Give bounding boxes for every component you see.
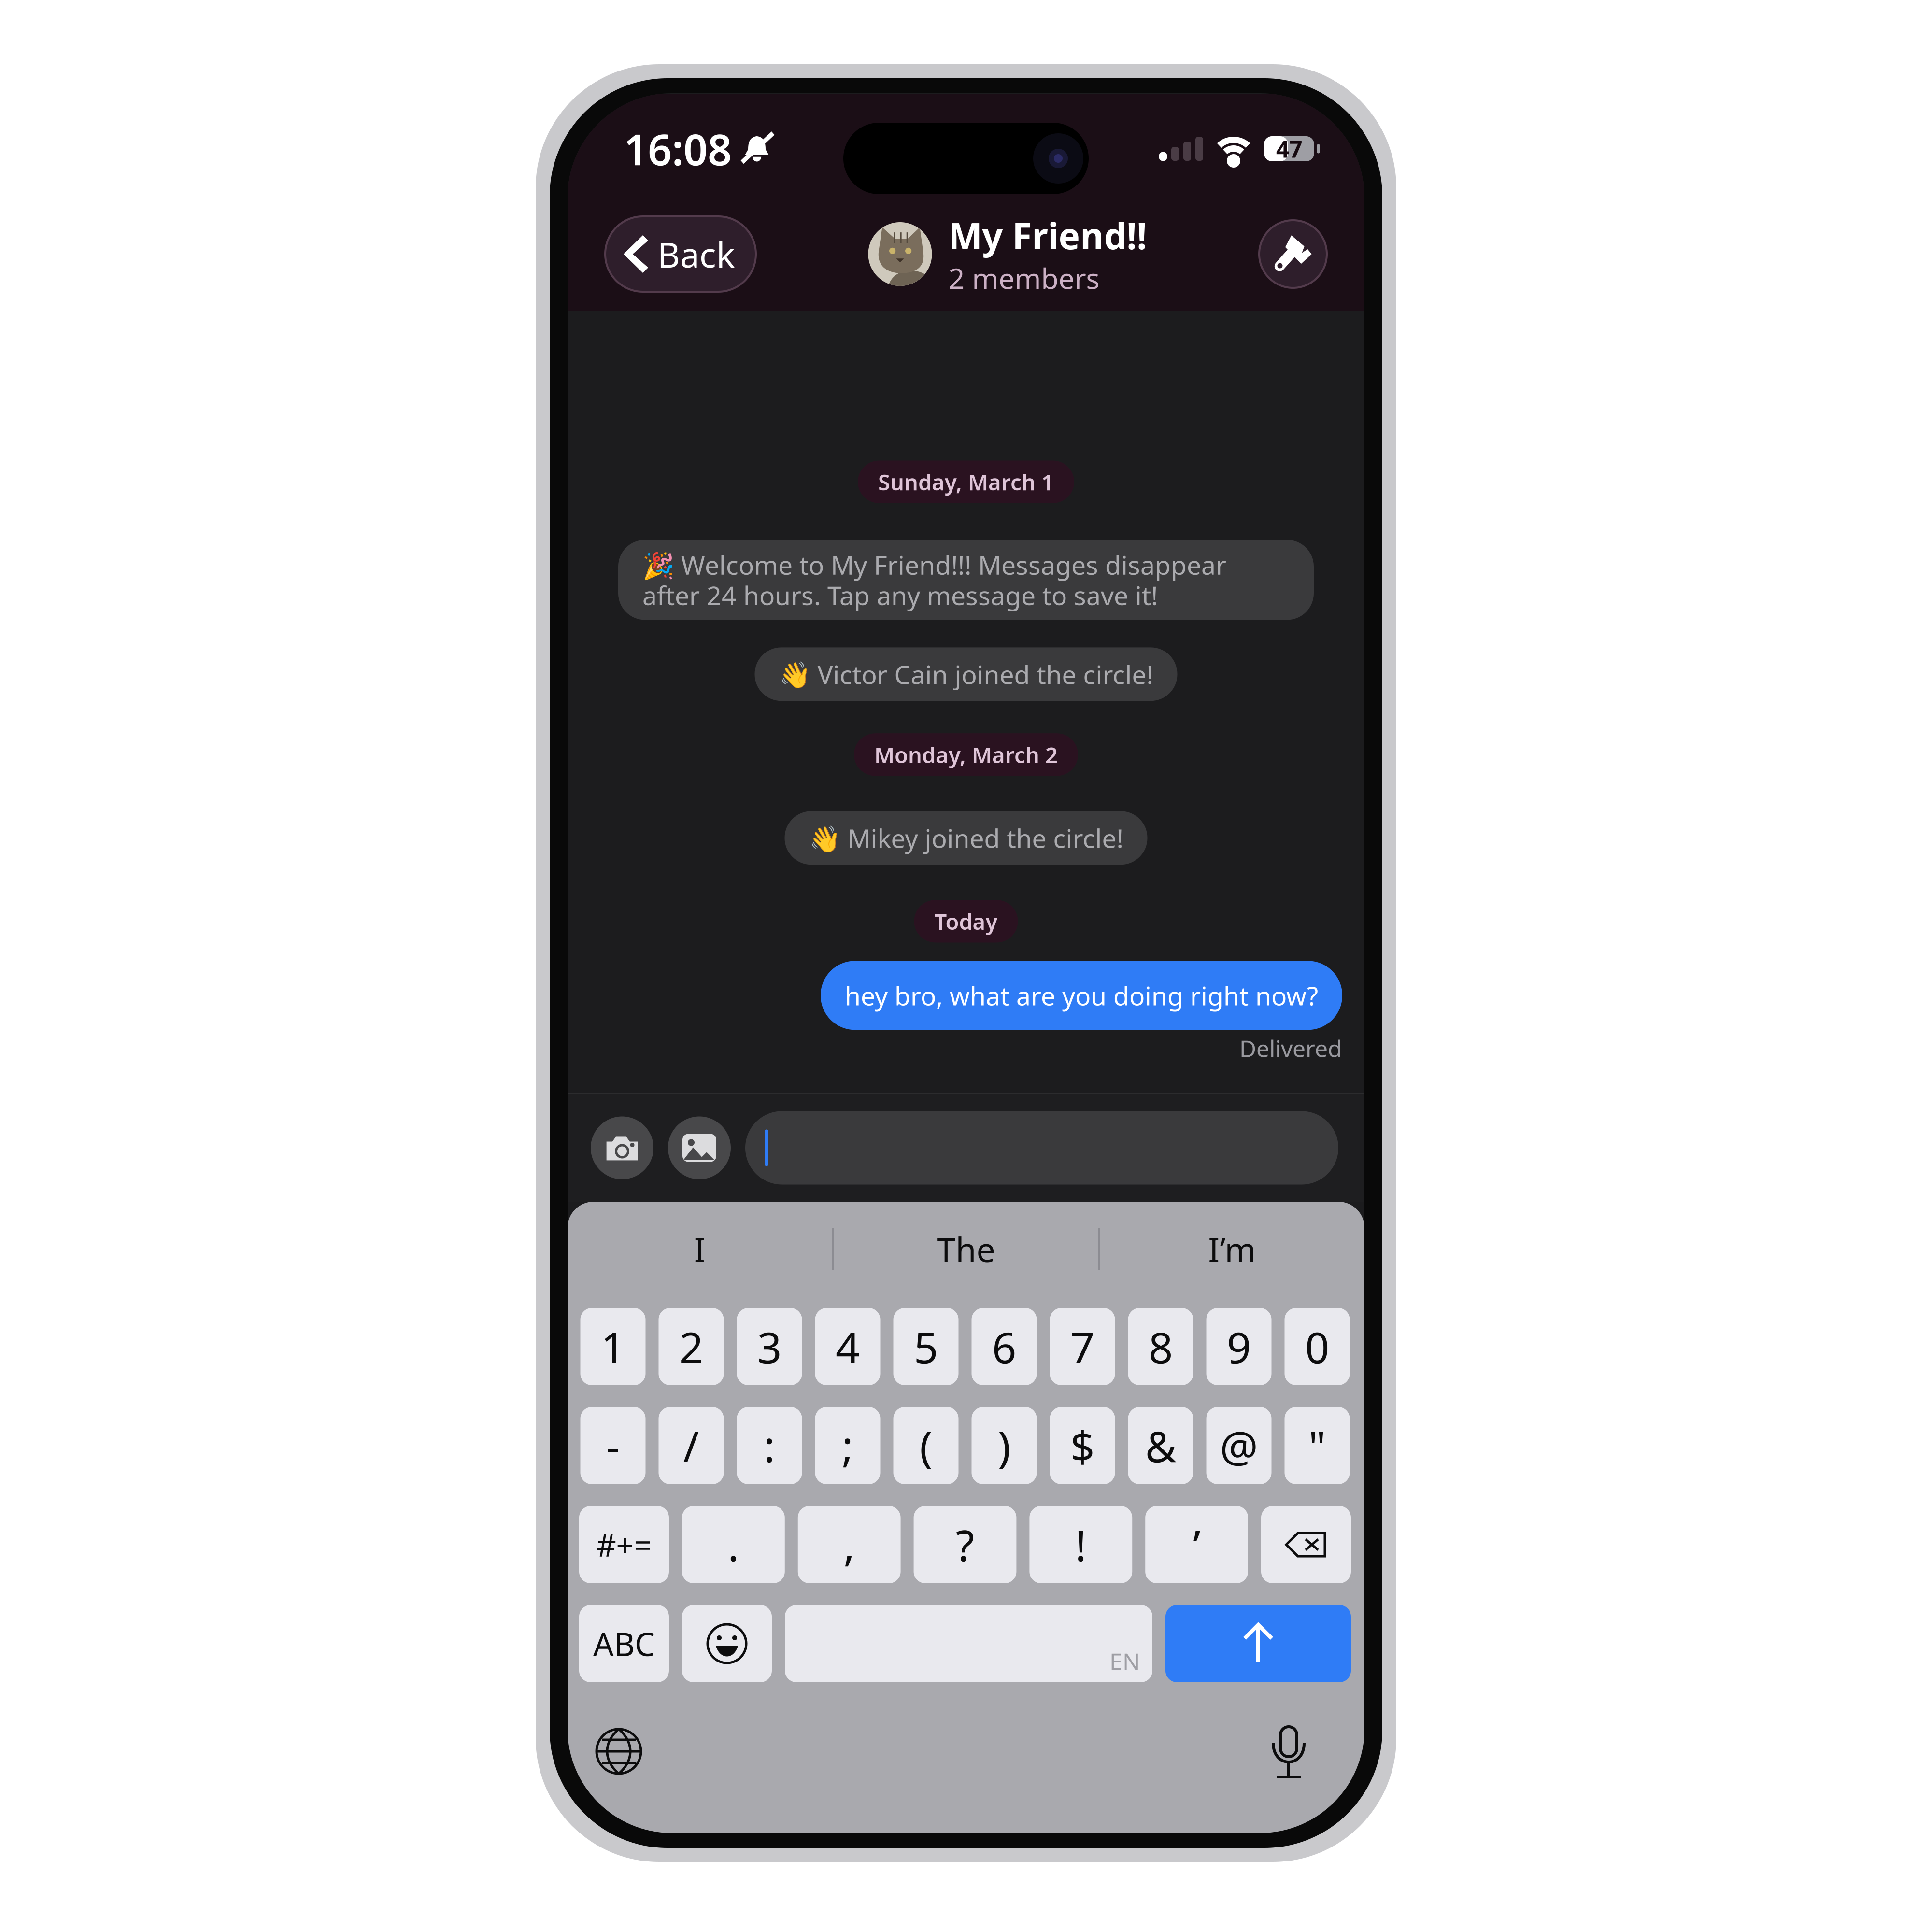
staticText: 2 [679,1318,703,1375]
staticText: 👋 Victor Cain joined the circle! [779,657,1153,691]
staticText: Today [934,907,998,936]
button[interactable]: ! [1029,1506,1132,1583]
button[interactable]: 8 [1128,1308,1193,1385]
staticText: 1 [601,1318,625,1375]
staticText: 16:08 [624,121,732,177]
button[interactable]: ’ [1145,1506,1248,1583]
staticText: ? [956,1516,974,1573]
button[interactable]: 5 [893,1308,959,1385]
button[interactable]: . [682,1506,785,1583]
button[interactable]: 👋 Victor Cain joined the circle! [755,647,1177,701]
button[interactable]: Send [1165,1605,1351,1682]
staticText: 8 [1149,1318,1173,1375]
staticText: The [937,1227,995,1271]
button[interactable]: ABC [579,1605,669,1682]
button[interactable]: Switch keyboard [595,1727,643,1776]
button[interactable]: Dictation [1272,1726,1306,1776]
staticText: ! [1075,1516,1087,1573]
button[interactable]: Camera [591,1116,653,1179]
button[interactable] [745,1111,1338,1185]
button[interactable]: 7 [1050,1308,1115,1385]
staticText: EN [1109,1646,1140,1676]
button[interactable]: @ [1206,1407,1271,1484]
button[interactable]: ( [893,1407,959,1484]
staticText: 2 members [948,259,1100,297]
staticText: Monday, March 2 [874,740,1058,769]
staticText: I [694,1227,706,1271]
staticText: Delivered [1239,1033,1342,1064]
staticText: & [1145,1417,1176,1474]
staticText: ) [998,1417,1010,1474]
staticText: hey bro, what are you doing right now? [845,978,1318,1012]
button[interactable]: Photos [668,1116,731,1179]
staticText: 4 [836,1318,860,1375]
button[interactable]: " [1285,1407,1350,1484]
staticText: ’ [1193,1516,1200,1573]
staticText: / [683,1417,699,1474]
button[interactable]: I [568,1202,832,1296]
button[interactable]: ? [914,1506,1016,1583]
button[interactable]: 0 [1285,1308,1350,1385]
button[interactable]: - [580,1407,646,1484]
button[interactable]: ; [815,1407,880,1484]
button[interactable]: Back [605,216,756,292]
staticText: ( [920,1417,932,1474]
button[interactable]: 🎉 Welcome to My Friend!!! Messages disap… [618,540,1314,620]
button[interactable]: Delete [1261,1506,1351,1583]
button[interactable]: I’m [1100,1202,1364,1296]
button[interactable]: 9 [1206,1308,1271,1385]
staticText: ; [842,1417,853,1474]
button[interactable]: EN [785,1605,1152,1682]
button[interactable]: Theme [1259,220,1327,288]
button[interactable]: 2 [659,1308,724,1385]
button[interactable]: $ [1050,1407,1115,1484]
button[interactable]: : [737,1407,802,1484]
button[interactable]: 3 [737,1308,802,1385]
staticText: Sunday, March 1 [878,467,1054,496]
button[interactable]: 6 [972,1308,1037,1385]
staticText: 7 [1070,1318,1094,1375]
button[interactable]: 1 [580,1308,646,1385]
staticText: 9 [1227,1318,1251,1375]
staticText: 47 [1276,133,1302,164]
staticText: #+= [596,1524,652,1565]
staticText: " [1308,1417,1326,1474]
staticText: $ [1070,1417,1094,1474]
button[interactable]: #+= [579,1506,669,1583]
staticText: - [606,1417,620,1474]
staticText: 3 [757,1318,781,1375]
button[interactable]: 👋 Mikey joined the circle! [785,811,1147,865]
staticText: I’m [1208,1227,1256,1271]
button[interactable]: & [1128,1407,1193,1484]
button[interactable]: hey bro, what are you doing right now? [821,961,1342,1030]
staticText: 🎉 Welcome to My Friend!!! Messages disap… [642,548,1226,612]
staticText: Back [657,231,735,277]
button[interactable]: / [659,1407,724,1484]
staticText: . [728,1516,739,1573]
staticText: 0 [1305,1318,1329,1375]
staticText: 6 [992,1318,1016,1375]
staticText: ABC [593,1622,655,1665]
staticText: : [764,1417,775,1474]
staticText: , [843,1516,855,1573]
button[interactable]: , [798,1506,901,1583]
staticText: 👋 Mikey joined the circle! [809,821,1123,855]
button[interactable]: Emoji [682,1605,772,1682]
staticText: My Friend!! [948,211,1147,259]
staticText: @ [1220,1417,1258,1474]
button[interactable]: ) [972,1407,1037,1484]
button[interactable]: The [834,1202,1098,1296]
staticText: 5 [914,1318,938,1375]
button[interactable]: 4 [815,1308,880,1385]
